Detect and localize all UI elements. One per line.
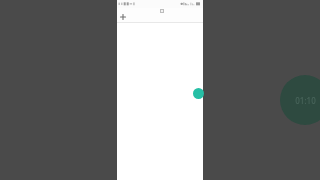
button[interactable]: New	[118, 12, 128, 22]
button[interactable]: Compose	[193, 88, 204, 99]
button[interactable]: Menu	[157, 6, 166, 15]
staticText: 01:10	[295, 95, 316, 106]
